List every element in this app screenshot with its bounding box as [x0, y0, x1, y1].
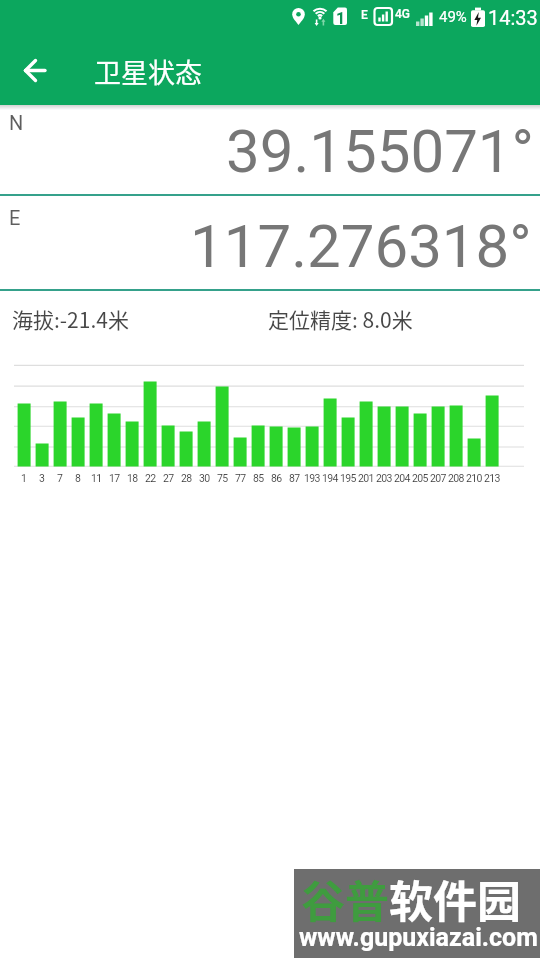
staticText: 87	[289, 472, 300, 484]
staticText: 27	[163, 472, 174, 484]
staticText: 18	[127, 472, 138, 484]
staticText: 117.276318°	[190, 211, 532, 281]
staticText: 205	[412, 472, 428, 484]
staticText: E	[9, 206, 21, 229]
staticText: 8	[75, 472, 81, 484]
staticText: www.gupuxiazai.com	[299, 923, 538, 952]
staticText: 207	[430, 472, 446, 484]
staticText: 14:33	[488, 6, 538, 29]
staticText: 213	[484, 472, 500, 484]
staticText: 11	[91, 472, 102, 484]
staticText: 194	[322, 472, 338, 484]
staticText: 软件园	[389, 867, 521, 931]
staticText: 208	[448, 472, 464, 484]
staticText: 203	[376, 472, 392, 484]
staticText: 204	[394, 472, 410, 484]
staticText: 75	[217, 472, 228, 484]
staticText: 77	[235, 472, 246, 484]
staticText: 谷普	[301, 867, 389, 931]
staticText: 1	[21, 472, 27, 484]
staticText: 7	[57, 472, 63, 484]
staticText: 4G	[395, 7, 410, 21]
staticText: 定位精度: 8.0米	[268, 304, 413, 334]
staticText: E	[361, 8, 368, 22]
staticText: 49%	[439, 8, 467, 26]
staticText: 210	[466, 472, 482, 484]
staticText: 193	[304, 472, 320, 484]
staticText: 201	[358, 472, 374, 484]
staticText: 30	[199, 472, 210, 484]
staticText: 86	[271, 472, 282, 484]
staticText: 22	[145, 472, 156, 484]
staticText: 海拔:-21.4米	[12, 304, 129, 334]
staticText: 85	[253, 472, 264, 484]
staticText: 28	[181, 472, 192, 484]
staticText: 195	[340, 472, 356, 484]
staticText: 39.155071°	[226, 116, 534, 186]
staticText: 卫星状态	[94, 52, 202, 91]
staticText: 1	[336, 9, 346, 28]
button[interactable]	[14, 53, 58, 89]
staticText: 17	[109, 472, 120, 484]
button[interactable]: 谷普	[294, 869, 540, 958]
staticText: 3	[39, 472, 45, 484]
staticText: N	[9, 111, 24, 134]
